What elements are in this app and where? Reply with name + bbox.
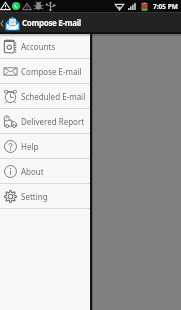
staticText: About (21, 166, 44, 177)
button[interactable]: About (0, 159, 90, 184)
staticText: Scheduled E-mail (21, 91, 86, 102)
staticText: Compose E-mail (21, 66, 82, 77)
button[interactable]: Navigate up (0, 12, 21, 34)
staticText: Setting (21, 191, 48, 202)
button[interactable]: Compose E-mail (0, 59, 90, 84)
button[interactable]: Delivered Report (0, 109, 90, 134)
staticText: Compose E-mail (22, 17, 81, 28)
button[interactable]: Help (0, 134, 90, 159)
staticText: Delivered Report (21, 116, 85, 127)
button[interactable]: Setting (0, 184, 90, 209)
button[interactable]: Scheduled E-mail (0, 84, 90, 109)
staticText: 7:05 PM (153, 2, 178, 11)
button[interactable]: Accounts (0, 34, 90, 59)
staticText: Help (21, 141, 39, 152)
staticText: Accounts (21, 41, 56, 52)
